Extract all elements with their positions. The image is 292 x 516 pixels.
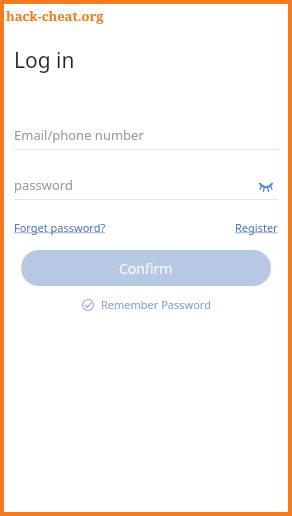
button[interactable]: password	[14, 171, 254, 199]
staticText: hack-cheat.org	[6, 7, 104, 25]
staticText: Log in	[14, 46, 75, 75]
button[interactable]: Show password	[254, 173, 278, 197]
button[interactable]: Confirm	[21, 250, 271, 286]
button[interactable]: Email/phone number	[14, 121, 278, 149]
staticText: password	[14, 176, 73, 194]
button[interactable]: Forget password?	[14, 218, 106, 237]
button[interactable]: Remember Password	[78, 295, 215, 314]
staticText: Register	[235, 220, 278, 235]
button[interactable]: Register	[235, 218, 278, 237]
staticText: Remember Password	[101, 297, 211, 312]
staticText: Email/phone number	[14, 126, 144, 144]
staticText: Forget password?	[14, 220, 106, 235]
staticText: Confirm	[119, 259, 173, 278]
